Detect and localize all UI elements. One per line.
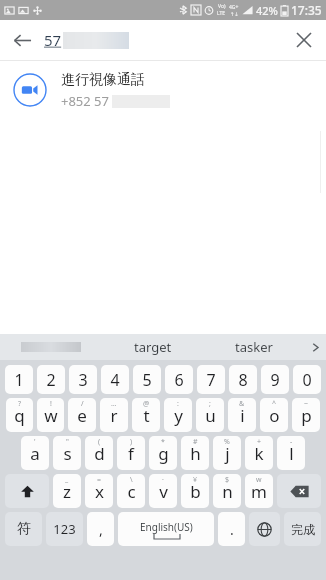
button[interactable]: 完成 xyxy=(284,512,321,546)
button[interactable]: v xyxy=(149,474,177,508)
button[interactable]: x xyxy=(85,474,113,508)
staticText: target xyxy=(134,338,172,356)
staticText: r xyxy=(110,404,118,427)
staticText: v xyxy=(159,480,168,503)
button[interactable]: k xyxy=(245,436,273,470)
staticText: , xyxy=(99,520,103,539)
staticText: ^ xyxy=(272,399,277,409)
button[interactable]: r xyxy=(100,398,128,432)
button[interactable]: 57 xyxy=(44,30,282,50)
staticText: … xyxy=(111,399,117,409)
button[interactable]: z xyxy=(53,474,81,508)
button[interactable]: o xyxy=(260,398,288,432)
button[interactable]: f xyxy=(117,436,145,470)
button[interactable]: s xyxy=(53,436,81,470)
staticText: w xyxy=(256,475,262,485)
button[interactable]: i xyxy=(228,398,256,432)
button[interactable]: Clear xyxy=(282,20,326,60)
button[interactable]: e xyxy=(68,398,96,432)
button[interactable]: j xyxy=(213,436,241,470)
staticText: 完成 xyxy=(291,522,315,537)
button[interactable]: m xyxy=(245,474,273,508)
staticText: LTE xyxy=(217,10,226,17)
staticText: ) xyxy=(130,437,133,447)
button[interactable]: 123 xyxy=(46,512,83,546)
staticText: 42% xyxy=(256,3,278,18)
button[interactable]: g xyxy=(149,436,177,470)
button[interactable]: More suggestions xyxy=(304,334,326,360)
button[interactable]: 7 xyxy=(197,365,225,394)
button[interactable]: d xyxy=(85,436,113,470)
staticText: h xyxy=(190,442,201,465)
staticText: ? xyxy=(18,399,22,409)
staticText: w xyxy=(44,404,58,427)
staticText: 17:35 xyxy=(291,2,322,18)
staticText: $ xyxy=(225,475,230,485)
button[interactable]: Space xyxy=(118,512,214,546)
button[interactable]: 5 xyxy=(133,365,161,394)
staticText: 8 xyxy=(238,369,248,391)
staticText: z xyxy=(63,480,71,503)
button[interactable]: n xyxy=(213,474,241,508)
button[interactable]: 9 xyxy=(261,365,289,394)
staticText: " xyxy=(66,437,69,447)
staticText: English(US) xyxy=(140,520,193,534)
staticText: 6 xyxy=(174,369,184,391)
staticText: d xyxy=(94,442,105,465)
staticText: i xyxy=(240,404,245,427)
button[interactable]: 6 xyxy=(165,365,193,394)
staticText: g xyxy=(158,442,169,465)
button[interactable]: Backspace xyxy=(277,474,321,508)
staticText: n xyxy=(222,480,233,503)
button[interactable]: tasker xyxy=(203,334,304,360)
staticText: 2 xyxy=(46,369,56,391)
button[interactable]: y xyxy=(164,398,192,432)
button[interactable]: u xyxy=(196,398,224,432)
staticText: 7 xyxy=(206,369,216,391)
button[interactable]: q xyxy=(6,398,33,432)
button[interactable]: t xyxy=(132,398,160,432)
button[interactable]: 0 xyxy=(293,365,321,394)
button[interactable]: Change keyboard language xyxy=(249,512,280,546)
staticText: 4 xyxy=(110,369,120,391)
button[interactable]: 符 xyxy=(5,512,42,546)
button[interactable]: target xyxy=(102,334,203,360)
staticText: j xyxy=(225,442,230,465)
button[interactable]: Back xyxy=(0,20,44,60)
staticText: = xyxy=(97,475,102,485)
staticText: p xyxy=(301,404,312,427)
staticText: ~ xyxy=(304,399,309,409)
staticText: · xyxy=(162,475,164,485)
staticText: c xyxy=(127,480,136,503)
staticText: e xyxy=(77,404,87,427)
button[interactable]: 3 xyxy=(69,365,97,394)
button[interactable]: h xyxy=(181,436,209,470)
button[interactable]: 2 xyxy=(37,365,65,394)
staticText: f xyxy=(128,442,134,465)
button[interactable]: 進行視像通話 xyxy=(0,61,326,119)
button[interactable]: Shift xyxy=(5,474,49,508)
button[interactable]: , xyxy=(87,512,114,546)
staticText: a xyxy=(30,442,40,465)
staticText: 4G+ xyxy=(229,4,239,11)
button[interactable]: . xyxy=(218,512,245,546)
button[interactable]: a xyxy=(21,436,49,470)
button[interactable]: b xyxy=(181,474,209,508)
button[interactable]: l xyxy=(277,436,305,470)
staticText: 符 xyxy=(17,520,31,538)
staticText: 57 xyxy=(44,30,62,50)
button[interactable]: c xyxy=(117,474,145,508)
button[interactable] xyxy=(0,334,102,360)
staticText: l xyxy=(289,442,294,465)
button[interactable]: w xyxy=(37,398,64,432)
button[interactable]: 4 xyxy=(101,365,129,394)
button[interactable]: 8 xyxy=(229,365,257,394)
staticText: 9 xyxy=(270,369,280,391)
staticText: 進行視像通話 xyxy=(61,71,145,89)
staticText: q xyxy=(14,404,25,427)
staticText: 3 xyxy=(78,369,88,391)
staticText: ¥ xyxy=(193,475,198,485)
button[interactable]: 1 xyxy=(5,365,33,394)
button[interactable]: p xyxy=(292,398,320,432)
staticText: y xyxy=(174,404,183,427)
